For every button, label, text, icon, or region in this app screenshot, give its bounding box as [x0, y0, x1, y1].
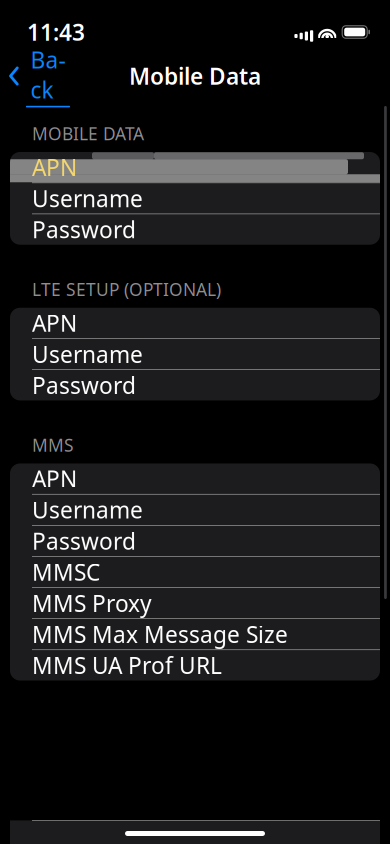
button[interactable]: Back	[2, 39, 76, 113]
button[interactable]: MMS Proxy	[10, 588, 380, 618]
button[interactable]: APN	[10, 308, 380, 338]
staticText: MMS Proxy	[32, 588, 152, 618]
button[interactable]: MMS UA Prof URL	[10, 650, 380, 681]
button[interactable]: MMSC	[10, 557, 380, 587]
staticText: MMS	[32, 433, 74, 456]
staticText: MMS UA Prof URL	[32, 650, 222, 680]
staticText: Username	[32, 183, 143, 213]
button[interactable]: APN	[10, 463, 380, 494]
staticText: APN	[32, 464, 77, 494]
button[interactable]: Username	[10, 495, 380, 525]
staticText: Username	[32, 495, 143, 525]
staticText: MOBILE DATA	[32, 122, 144, 145]
staticText: Username	[32, 339, 143, 369]
button[interactable]: Password	[10, 526, 380, 556]
staticText: Password	[32, 370, 136, 400]
button[interactable]: Password	[10, 214, 380, 245]
staticText: Back	[30, 45, 65, 105]
staticText: MMSC	[32, 557, 100, 587]
staticText: Password	[32, 526, 136, 556]
staticText: 11:43	[27, 17, 85, 47]
staticText: Password	[32, 214, 136, 244]
staticText: APN	[32, 152, 77, 182]
staticText: APN	[32, 308, 77, 338]
button[interactable]: MMS Max Message Size	[10, 619, 380, 649]
staticText: Mobile Data	[129, 61, 261, 91]
button[interactable]: Password	[10, 370, 380, 400]
button[interactable]: Username	[10, 183, 380, 214]
staticText: MMS Max Message Size	[32, 619, 288, 649]
staticText: LTE SETUP (OPTIONAL)	[32, 278, 221, 301]
button[interactable]: APN	[10, 152, 380, 182]
button[interactable]: Username	[10, 339, 380, 369]
